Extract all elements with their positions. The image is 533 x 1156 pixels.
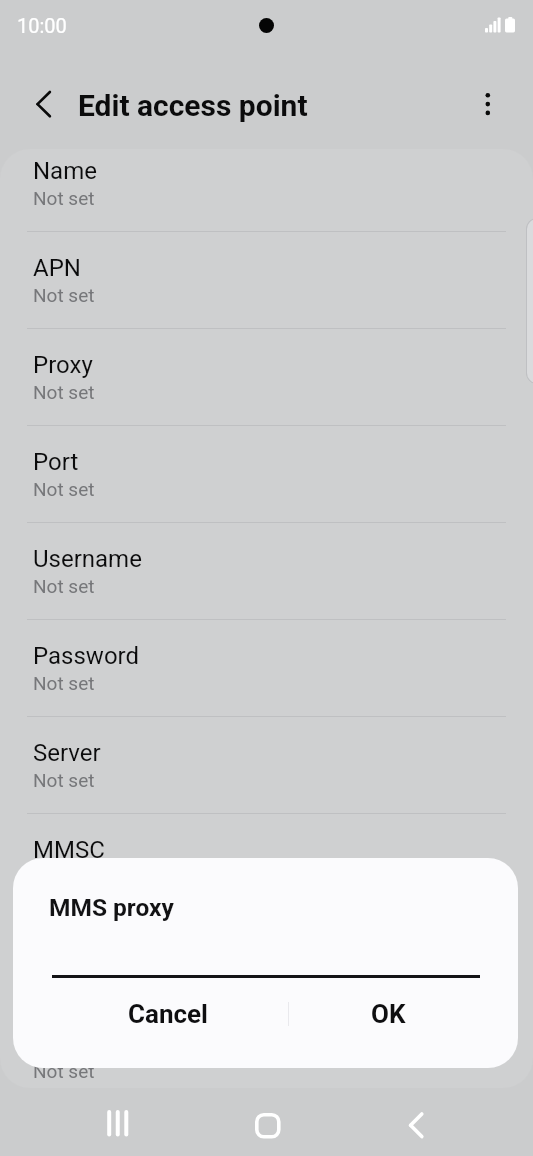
staticText: Not set (33, 672, 95, 694)
staticText: Username (33, 545, 142, 573)
button[interactable]: Server (0, 716, 533, 813)
staticText: Not set (33, 963, 95, 985)
button[interactable]: Cancel (58, 982, 278, 1046)
staticText: Not set (33, 478, 95, 500)
button[interactable]: MMSC (0, 813, 533, 910)
button[interactable]: Home (235, 1102, 297, 1142)
staticText: Not set (33, 1060, 95, 1082)
button[interactable]: Back (385, 1102, 447, 1142)
staticText: 10:00 (17, 14, 67, 37)
staticText: MMSC (33, 836, 105, 864)
staticText: Port (33, 448, 79, 476)
staticText: Proxy (33, 351, 93, 379)
staticText: Not set (33, 575, 95, 597)
staticText: Cancel (128, 999, 208, 1029)
button[interactable]: APN (0, 231, 533, 328)
button[interactable]: Proxy (0, 328, 533, 425)
button[interactable]: MMS port (0, 1007, 533, 1088)
staticText: Not set (33, 187, 95, 209)
staticText: Not set (33, 284, 95, 306)
button[interactable]: Username (0, 522, 533, 619)
button[interactable]: Recent apps (88, 1102, 150, 1142)
staticText: Name (33, 157, 97, 185)
button[interactable]: Password (0, 619, 533, 716)
staticText: Not set (33, 381, 95, 403)
button[interactable]: OK (278, 982, 499, 1046)
button[interactable]: Name (0, 149, 533, 231)
button[interactable]: Port (0, 425, 533, 522)
staticText: OK (371, 999, 406, 1029)
button[interactable]: Navigate up (14, 80, 62, 128)
staticText: MMS proxy (49, 893, 174, 922)
button[interactable]: MMS proxy (0, 910, 533, 1007)
button[interactable]: More options (464, 80, 512, 128)
staticText: APN (33, 254, 81, 282)
staticText: Password (33, 642, 140, 670)
staticText: Edit access point (78, 88, 308, 123)
staticText: Server (33, 739, 101, 767)
staticText: Not set (33, 769, 95, 791)
